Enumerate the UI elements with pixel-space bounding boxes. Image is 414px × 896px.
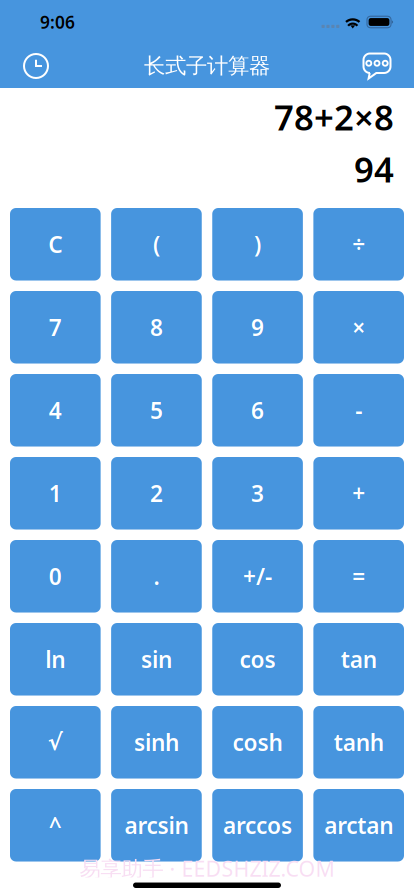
staticText: arcsin [124, 810, 188, 840]
button[interactable]: ln [10, 623, 101, 695]
staticText: ÷ [352, 229, 365, 259]
staticText: ) [254, 229, 261, 259]
button[interactable]: 5 [111, 374, 202, 446]
button[interactable]: 8 [111, 291, 202, 363]
staticText: 4 [49, 395, 62, 425]
button[interactable]: 7 [10, 291, 101, 363]
button[interactable]: cos [212, 623, 303, 695]
button[interactable]: √ [10, 706, 101, 778]
staticText: cosh [233, 727, 283, 757]
button[interactable]: 1 [10, 457, 101, 529]
staticText: - [355, 395, 362, 425]
staticText: 0 [49, 561, 62, 591]
button[interactable]: arcsin [111, 789, 202, 861]
button[interactable]: = [313, 540, 404, 612]
staticText: 94 [354, 146, 394, 192]
button[interactable]: Feedback [355, 44, 399, 88]
button[interactable]: - [313, 374, 404, 446]
staticText: arctan [324, 810, 393, 840]
staticText: 1 [49, 478, 62, 508]
staticText: 2 [150, 478, 163, 508]
button[interactable]: sinh [111, 706, 202, 778]
button[interactable]: 2 [111, 457, 202, 529]
staticText: 易享助手 · EEDSHZIZ.COM [79, 854, 334, 883]
staticText: ^ [49, 810, 62, 840]
button[interactable]: arctan [313, 789, 404, 861]
button[interactable]: × [313, 291, 404, 363]
staticText: arccos [223, 810, 292, 840]
staticText: sinh [134, 727, 179, 757]
button[interactable]: 0 [10, 540, 101, 612]
button[interactable]: 9 [212, 291, 303, 363]
button[interactable]: 3 [212, 457, 303, 529]
button[interactable]: ^ [10, 789, 101, 861]
staticText: C [48, 229, 62, 259]
button[interactable]: + [313, 457, 404, 529]
staticText: . [153, 561, 159, 591]
button[interactable]: +/- [212, 540, 303, 612]
staticText: 7 [49, 312, 62, 342]
button[interactable]: tan [313, 623, 404, 695]
staticText: cos [240, 644, 276, 674]
button[interactable]: C [10, 208, 101, 280]
staticText: ( [153, 229, 160, 259]
button[interactable]: tanh [313, 706, 404, 778]
staticText: tan [341, 644, 377, 674]
staticText: tanh [334, 727, 384, 757]
staticText: 长式子计算器 [144, 53, 270, 79]
staticText: + [352, 478, 365, 508]
staticText: √ [48, 729, 63, 755]
staticText: ln [45, 644, 65, 674]
button[interactable]: arccos [212, 789, 303, 861]
button[interactable]: sin [111, 623, 202, 695]
staticText: sin [141, 644, 172, 674]
button[interactable]: History [14, 44, 58, 88]
staticText: 5 [150, 395, 163, 425]
staticText: +/- [243, 561, 272, 591]
button[interactable]: 4 [10, 374, 101, 446]
button[interactable]: ( [111, 208, 202, 280]
button[interactable]: cosh [212, 706, 303, 778]
button[interactable]: ) [212, 208, 303, 280]
staticText: = [352, 561, 365, 591]
staticText: 8 [150, 312, 163, 342]
staticText: 3 [251, 478, 264, 508]
button[interactable]: ÷ [313, 208, 404, 280]
staticText: 78+2×8 [274, 94, 394, 140]
button[interactable]: . [111, 540, 202, 612]
staticText: 6 [251, 395, 264, 425]
staticText: × [352, 312, 365, 342]
staticText: 9:06 [40, 10, 75, 33]
staticText: 9 [251, 312, 264, 342]
button[interactable]: 6 [212, 374, 303, 446]
